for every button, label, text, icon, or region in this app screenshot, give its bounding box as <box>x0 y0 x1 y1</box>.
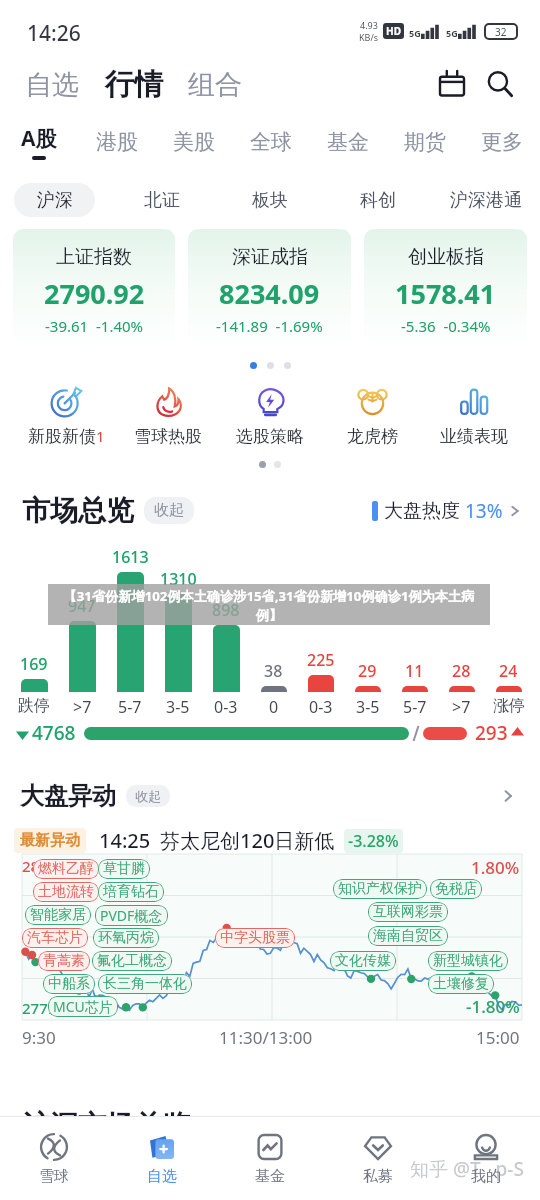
staticText: 文化传媒 <box>335 952 391 970</box>
staticText: 2790.92 <box>44 275 145 312</box>
button[interactable]: 板块 <box>216 175 324 225</box>
staticText: -3.28% <box>348 830 399 852</box>
staticText: 28 <box>452 660 471 682</box>
staticText: 创业板指 <box>408 245 484 269</box>
staticText: 草甘膦 <box>103 860 145 878</box>
button[interactable]: 深证成指 <box>188 229 351 343</box>
staticText: 1 <box>96 426 105 446</box>
staticText: 燃料乙醇 <box>38 860 94 878</box>
button[interactable]: 全球 <box>232 116 309 168</box>
staticText: 市场总览 <box>22 493 134 528</box>
button[interactable]: 收起 <box>126 785 170 807</box>
button[interactable]: 基金 <box>216 1117 324 1200</box>
staticText: 涨停 <box>493 696 525 716</box>
staticText: 中船系 <box>48 975 90 993</box>
staticText: 期货 <box>404 129 446 155</box>
staticText: 海南自贸区 <box>373 927 443 945</box>
staticText: 0-3 <box>309 696 333 718</box>
staticText: KB/s <box>359 31 379 43</box>
staticText: 我的 <box>471 1167 501 1186</box>
staticText: 169 <box>20 653 48 675</box>
button[interactable]: 上证指数 <box>13 229 175 343</box>
staticText: 大盘异动 <box>20 781 116 811</box>
staticText: 汽车芯片 <box>27 929 83 947</box>
staticText: 美股 <box>173 129 215 155</box>
staticText: 1578.41 <box>395 275 496 312</box>
button[interactable]: 期货 <box>386 116 463 168</box>
button[interactable]: 收起 <box>144 497 194 524</box>
button[interactable]: 自选 <box>19 60 85 110</box>
button[interactable]: 沪深港通 <box>432 175 540 225</box>
button[interactable]: 沪深 <box>0 175 108 225</box>
staticText: 业绩表现 <box>440 426 508 447</box>
staticText: 2779.71 <box>22 998 78 1018</box>
button[interactable]: 组合 <box>182 60 248 110</box>
staticText: A股 <box>21 124 57 153</box>
staticText: 4.93 <box>360 19 378 31</box>
button[interactable]: 更多 <box>463 116 540 168</box>
staticText: 长三角一体化 <box>103 975 187 993</box>
button[interactable]: 大盘热度 <box>372 498 522 524</box>
button[interactable]: More <box>496 784 520 808</box>
staticText: 中字头股票 <box>220 929 290 947</box>
button[interactable]: A股 <box>0 116 78 168</box>
staticText: 选股策略 <box>236 426 304 447</box>
button[interactable]: 私募 <box>324 1117 432 1200</box>
staticText: 8234.09 <box>219 275 320 312</box>
staticText: 32 <box>495 25 507 39</box>
staticText: 5G <box>446 27 458 39</box>
staticText: 沪深港通 <box>450 189 522 212</box>
button[interactable]: 我的 <box>432 1117 540 1200</box>
staticText: 29 <box>358 660 377 682</box>
staticText: 知识产权保护 <box>338 880 422 898</box>
staticText: 5-7 <box>403 696 427 718</box>
button[interactable]: 龙虎榜 <box>321 386 423 447</box>
button[interactable]: 创业板指 <box>364 229 527 343</box>
button[interactable]: 基金 <box>309 116 386 168</box>
staticText: 更多 <box>481 129 523 155</box>
button[interactable]: 雪球热股 <box>117 386 219 447</box>
staticText: 北证 <box>144 189 180 212</box>
staticText: 土地流转 <box>38 883 94 901</box>
button[interactable]: 港股 <box>78 116 155 168</box>
button[interactable]: 自选 <box>108 1117 216 1200</box>
staticText: 11:30/13:00 <box>219 1026 313 1049</box>
staticText: 225 <box>307 649 335 671</box>
staticText: 土壤修复 <box>433 975 489 993</box>
button[interactable]: 科创 <box>324 175 432 225</box>
staticText: 自选 <box>25 68 79 102</box>
staticText: 行情 <box>105 66 163 103</box>
staticText: 898 <box>212 599 240 621</box>
staticText: 【31省份新增102例本土确诊涉15省,31省份新增10例确诊1例为本土病例】 <box>52 587 486 624</box>
staticText: 港股 <box>96 129 138 155</box>
staticText: 293 <box>475 720 508 746</box>
staticText: 2881.35 <box>22 856 78 876</box>
staticText: 私募 <box>363 1167 393 1186</box>
staticText: >7 <box>452 696 471 718</box>
button[interactable]: Search <box>480 64 520 104</box>
staticText: 环氧丙烷 <box>98 929 154 947</box>
staticText: 大盘热度 <box>384 499 460 523</box>
staticText: -1.80% <box>466 995 520 1018</box>
staticText: 跌停 <box>18 696 50 716</box>
staticText: 智能家居 <box>30 906 86 924</box>
staticText: 免税店 <box>435 880 477 898</box>
button[interactable]: 北证 <box>108 175 216 225</box>
button[interactable]: 业绩表现 <box>423 386 525 447</box>
staticText: 收起 <box>154 501 184 520</box>
button[interactable]: 选股策略 <box>219 386 321 447</box>
button[interactable]: 行情 <box>99 58 169 111</box>
button[interactable]: Calendar <box>432 64 472 104</box>
staticText: 科创 <box>360 189 396 212</box>
staticText: 最新异动 <box>20 831 80 850</box>
button[interactable]: 雪球 <box>0 1117 108 1200</box>
staticText: 5-7 <box>118 696 142 718</box>
staticText: 雪球热股 <box>134 426 202 447</box>
staticText: PVDF概念 <box>100 906 163 925</box>
button[interactable]: 美股 <box>155 116 232 168</box>
button[interactable]: 新股新债 <box>15 386 117 447</box>
staticText: MCU芯片 <box>53 997 113 1016</box>
staticText: 38 <box>264 660 283 682</box>
staticText: 雪球 <box>39 1167 69 1186</box>
staticText: 0-3 <box>214 696 238 718</box>
